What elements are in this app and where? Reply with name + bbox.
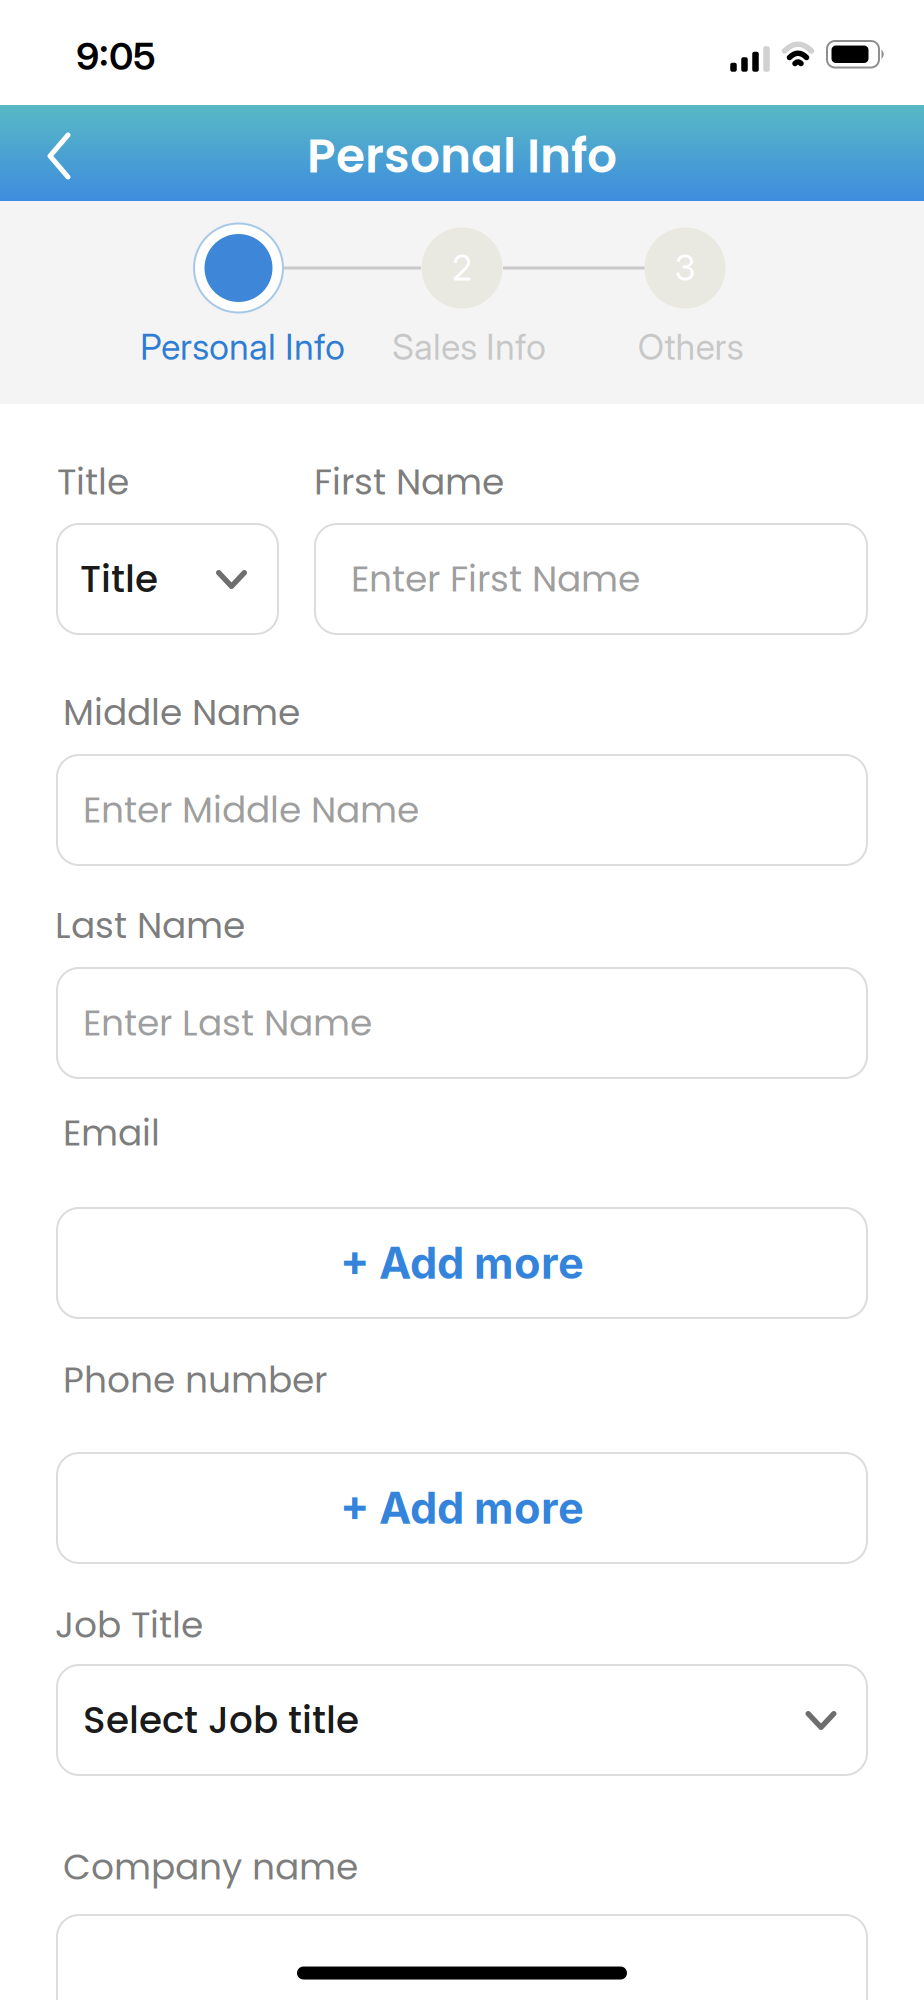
staticText: Title	[80, 553, 158, 605]
staticText: First Name	[314, 457, 504, 507]
staticText: 2	[452, 247, 472, 289]
button[interactable]: Enter First Name	[315, 524, 867, 634]
staticText: Middle Name	[63, 687, 300, 738]
staticText: + Add more	[340, 1237, 584, 1289]
staticText: Personal Info	[307, 123, 617, 189]
staticText: Email	[63, 1108, 160, 1158]
button[interactable]: Enter Middle Name	[57, 755, 867, 865]
button[interactable]: Enter Last Name	[57, 968, 867, 1078]
staticText: Select Job title	[83, 1694, 359, 1746]
button[interactable]: Select Job title	[57, 1665, 867, 1775]
staticText: Title	[57, 457, 129, 507]
button[interactable]: + Add more	[57, 1208, 867, 1318]
staticText: Personal Info	[140, 326, 345, 368]
button[interactable]: Company name	[57, 1915, 867, 2000]
staticText: + Add more	[340, 1482, 584, 1534]
staticText: Company name	[63, 1842, 358, 1892]
staticText: Job Title	[55, 1600, 203, 1650]
button[interactable]: Back	[14, 108, 104, 204]
staticText: Sales Info	[392, 326, 546, 368]
staticText: Others	[637, 326, 743, 368]
staticText: Phone number	[63, 1355, 327, 1405]
staticText: Enter First Name	[351, 554, 640, 604]
staticText: Last Name	[55, 900, 245, 951]
button[interactable]: + Add more	[57, 1453, 867, 1563]
staticText: Enter Last Name	[83, 998, 372, 1048]
staticText: 3	[674, 247, 695, 289]
button[interactable]: Title	[57, 524, 278, 634]
staticText: Enter Middle Name	[83, 785, 419, 835]
staticText: 9:05	[76, 33, 156, 79]
